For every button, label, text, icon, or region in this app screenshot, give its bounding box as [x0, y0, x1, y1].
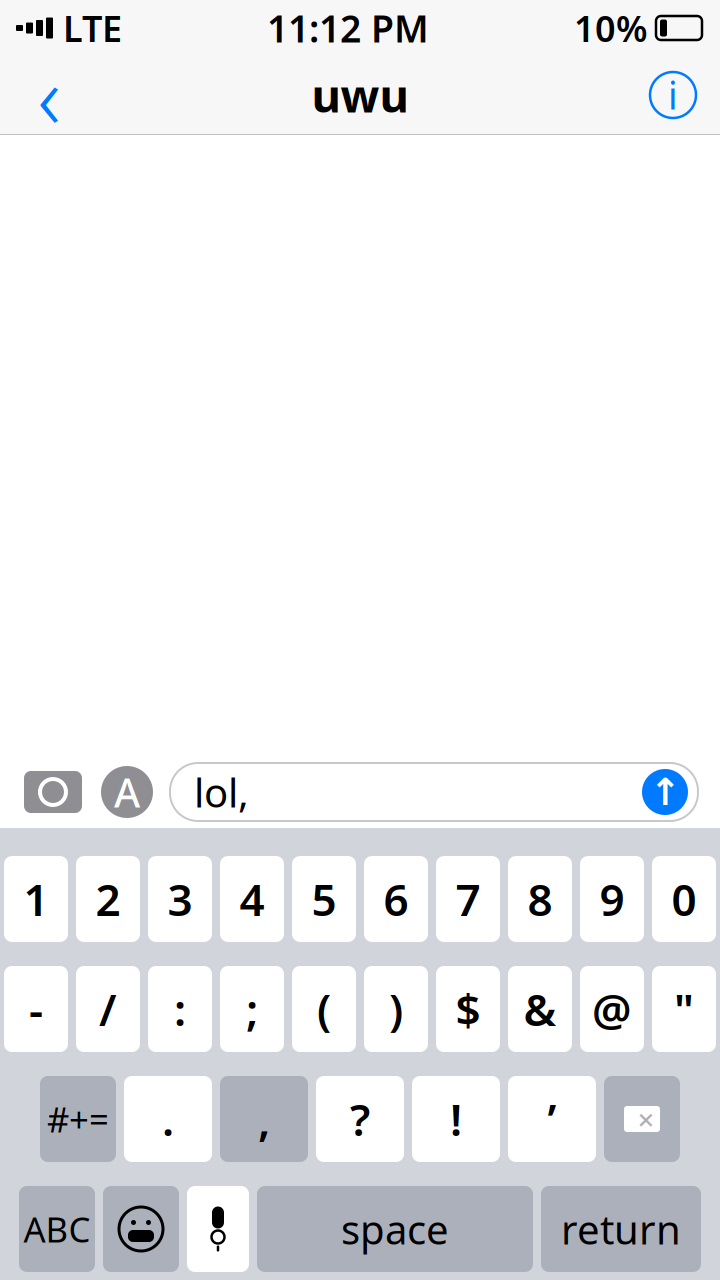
staticText: ‹	[37, 37, 60, 153]
button[interactable]: 9	[580, 856, 644, 942]
staticText: 2	[95, 870, 120, 928]
staticText: 0	[671, 870, 696, 928]
staticText: A	[114, 765, 140, 818]
button[interactable]: ,	[220, 1076, 308, 1162]
button[interactable]: Camera	[22, 764, 84, 820]
staticText: )	[389, 980, 403, 1038]
staticText: (	[317, 980, 331, 1038]
staticText: space	[341, 1202, 449, 1255]
staticText: ’	[547, 1090, 556, 1148]
staticText: LTE	[63, 4, 122, 52]
staticText: 8	[527, 870, 552, 928]
staticText: ;	[246, 980, 258, 1038]
button[interactable]: ?	[316, 1076, 404, 1162]
staticText: -	[29, 980, 43, 1038]
staticText: 9	[599, 870, 624, 928]
button[interactable]: 5	[292, 856, 356, 942]
staticText: "	[674, 980, 694, 1038]
staticText: /	[99, 980, 117, 1038]
button[interactable]: 3	[148, 856, 212, 942]
button[interactable]: :	[148, 966, 212, 1052]
button[interactable]: 1	[4, 856, 68, 942]
staticText: 7	[455, 870, 480, 928]
staticText: i	[668, 70, 678, 120]
staticText: !	[450, 1090, 462, 1148]
button[interactable]: space	[257, 1186, 533, 1272]
staticText: lol,	[194, 765, 249, 818]
button[interactable]: $	[436, 966, 500, 1052]
button[interactable]: .	[124, 1076, 212, 1162]
button[interactable]: 0	[652, 856, 716, 942]
staticText: :	[174, 980, 186, 1038]
button[interactable]: Dictation	[187, 1186, 249, 1272]
button[interactable]: /	[76, 966, 140, 1052]
staticText: 3	[167, 870, 192, 928]
button[interactable]: 2	[76, 856, 140, 942]
button[interactable]: 6	[364, 856, 428, 942]
staticText: $	[455, 980, 480, 1038]
button[interactable]: Send	[638, 765, 692, 819]
button[interactable]: 7	[436, 856, 500, 942]
staticText: ×	[637, 1099, 654, 1138]
button[interactable]: ABC	[19, 1186, 95, 1272]
staticText: ,	[258, 1090, 270, 1148]
button[interactable]: Back	[10, 58, 88, 132]
button[interactable]: "	[652, 966, 716, 1052]
button[interactable]: ’	[508, 1076, 596, 1162]
staticText: ↑	[649, 771, 680, 813]
staticText: 1	[23, 870, 48, 928]
button[interactable]: 8	[508, 856, 572, 942]
staticText: @	[592, 980, 632, 1038]
button[interactable]: &	[508, 966, 572, 1052]
staticText: ABC	[23, 1206, 90, 1252]
button[interactable]: ;	[220, 966, 284, 1052]
button[interactable]: Details	[636, 58, 710, 132]
button[interactable]: )	[364, 966, 428, 1052]
button[interactable]: Emoji	[103, 1186, 179, 1272]
staticText: 10%	[574, 4, 648, 52]
button[interactable]: 4	[220, 856, 284, 942]
staticText: #+=	[47, 1096, 109, 1142]
button[interactable]: !	[412, 1076, 500, 1162]
button[interactable]: #+=	[40, 1076, 116, 1162]
staticText: 6	[383, 870, 408, 928]
button[interactable]: (	[292, 966, 356, 1052]
staticText: uwu	[311, 65, 408, 125]
staticText: ?	[350, 1090, 370, 1148]
button[interactable]: Delete	[604, 1076, 680, 1162]
button[interactable]: -	[4, 966, 68, 1052]
staticText: .	[162, 1090, 174, 1148]
button[interactable]: return	[541, 1186, 701, 1272]
staticText: 11:12 PM	[267, 3, 429, 53]
button[interactable]: App Store	[98, 764, 156, 820]
staticText: 4	[239, 870, 264, 928]
staticText: return	[561, 1202, 681, 1255]
button[interactable]: @	[580, 966, 644, 1052]
staticText: &	[523, 980, 556, 1038]
staticText: 5	[311, 870, 336, 928]
